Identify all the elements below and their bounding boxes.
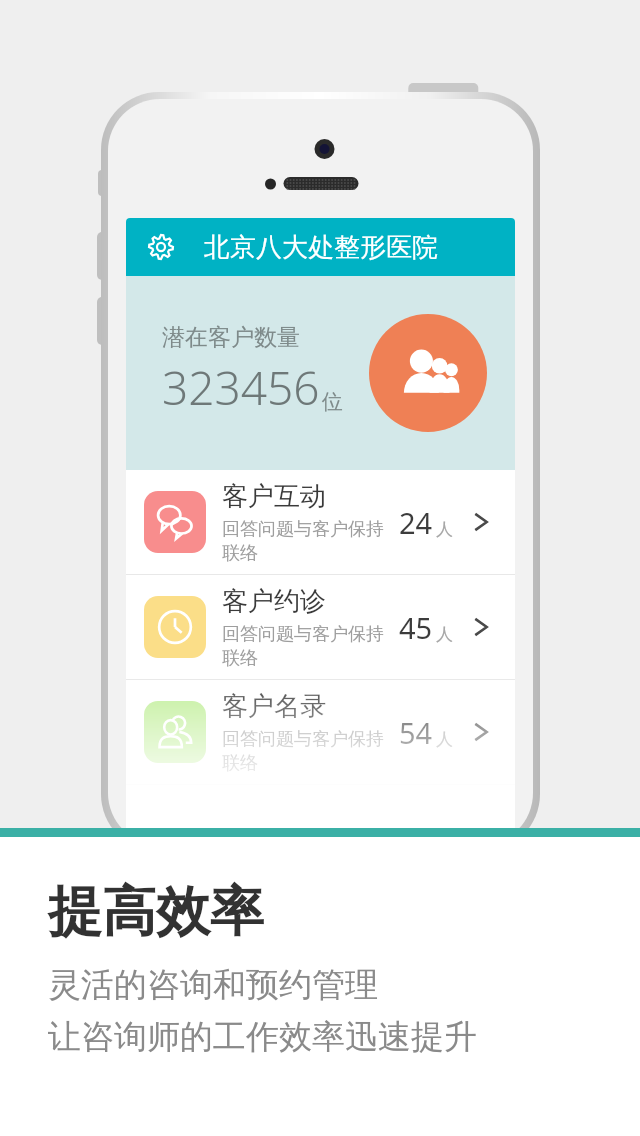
button[interactable]: Open 客户名录: [467, 718, 495, 746]
staticText: 323456: [162, 356, 320, 419]
button[interactable]: 客户互动: [126, 470, 515, 574]
staticText: 回答问题与客户保持联络: [222, 518, 399, 564]
staticText: 54: [399, 713, 433, 752]
staticText: 客户互动: [222, 480, 326, 513]
button[interactable]: 客户名录: [126, 680, 515, 784]
staticText: 人: [436, 729, 453, 750]
button[interactable]: Potential customers: [369, 314, 487, 432]
staticText: 客户约诊: [222, 585, 326, 618]
staticText: 回答问题与客户保持联络: [222, 623, 399, 669]
staticText: 24: [399, 503, 433, 542]
staticText: 人: [436, 519, 453, 540]
staticText: 让咨询师的工作效率迅速提升: [48, 1016, 477, 1058]
staticText: 回答问题与客户保持联络: [222, 728, 399, 774]
button[interactable]: Settings: [140, 226, 182, 268]
button[interactable]: Open 客户互动: [467, 508, 495, 536]
staticText: 潜在客户数量: [162, 323, 300, 352]
button[interactable]: Open 客户约诊: [467, 613, 495, 641]
staticText: 45: [399, 608, 433, 647]
staticText: 北京八大处整形医院: [204, 231, 438, 264]
staticText: 灵活的咨询和预约管理: [48, 964, 378, 1006]
staticText: 客户名录: [222, 690, 326, 723]
staticText: 提高效率: [48, 878, 264, 946]
staticText: 人: [436, 624, 453, 645]
button[interactable]: 客户约诊: [126, 575, 515, 679]
staticText: 位: [322, 389, 343, 415]
